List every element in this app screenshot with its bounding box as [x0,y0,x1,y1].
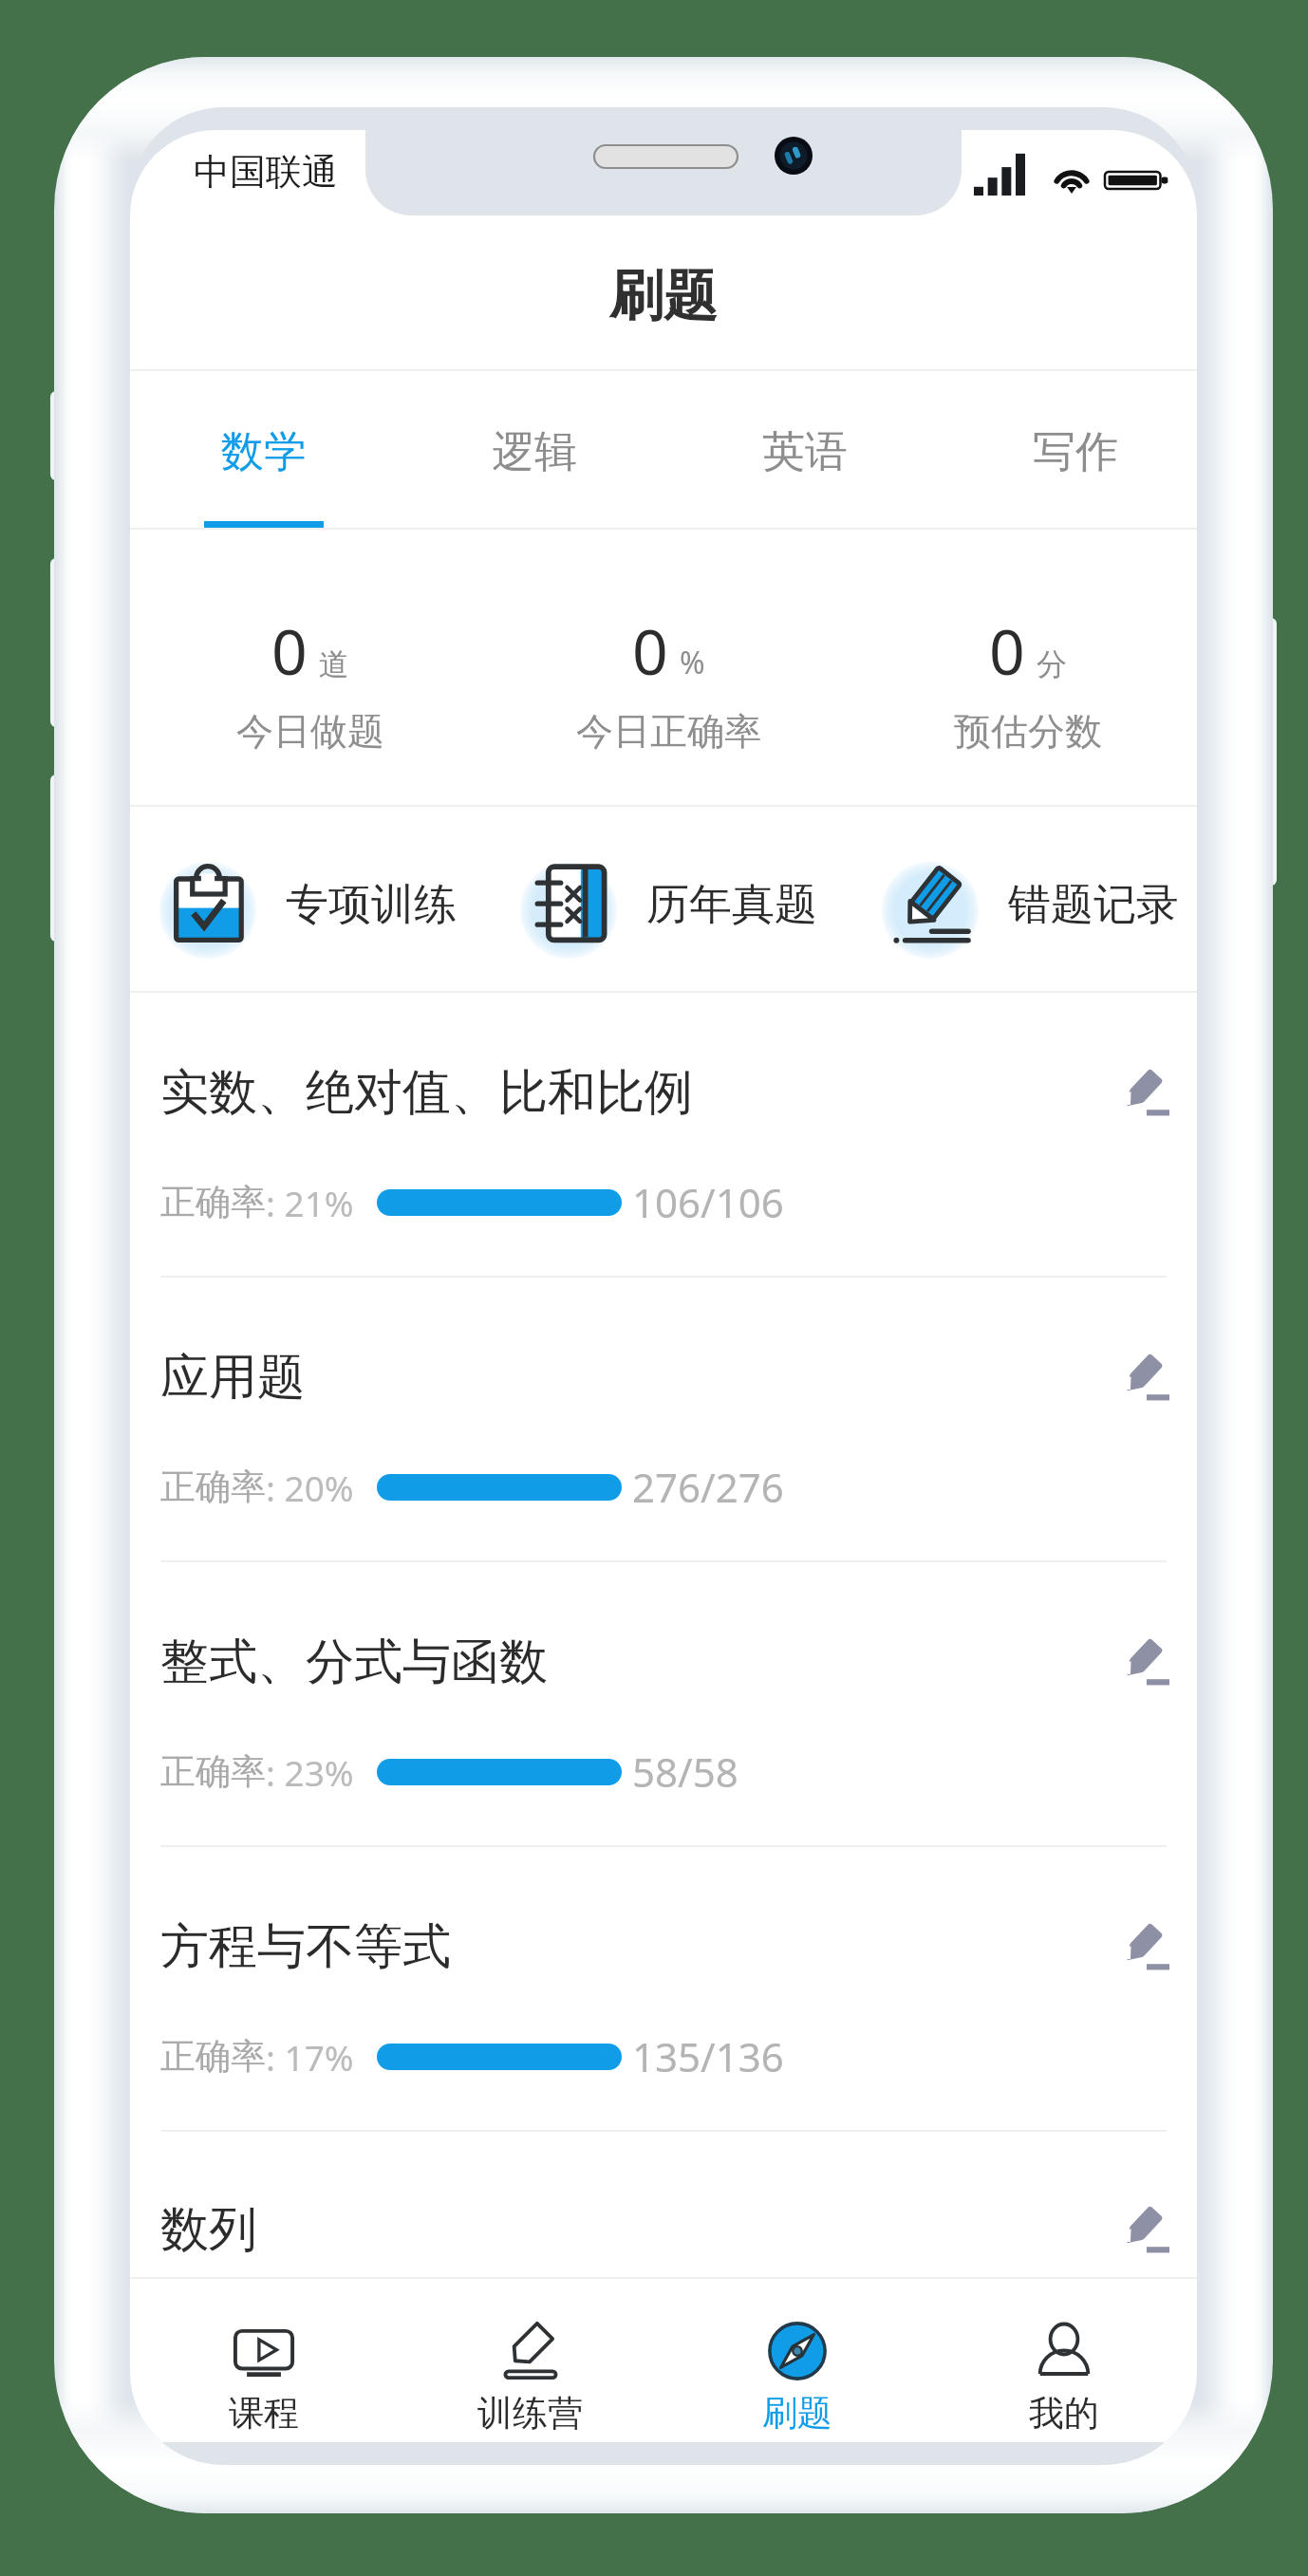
staticText: 106/106 [632,1175,784,1229]
button[interactable]: 错题记录 [851,807,1197,993]
button[interactable]: 实数、绝对值、比和比例 [130,993,1197,1278]
button[interactable]: 历年真题 [490,807,846,993]
staticText: 0 [271,607,308,693]
button[interactable]: 数列 [130,2132,1197,2277]
staticText: : 23% [266,1748,354,1796]
staticText: 预估分数 [954,708,1102,755]
staticText: 正确率 [160,1749,266,1794]
staticText: 刷题 [609,262,718,330]
staticText: 实数、绝对值、比和比例 [160,1062,693,1123]
staticText: 英语 [762,425,848,479]
button[interactable]: 专项训练 [130,807,485,993]
staticText: 错题记录 [1008,878,1179,932]
staticText: 我的 [1029,2391,1099,2436]
staticText: 训练营 [477,2391,583,2436]
button[interactable]: 编辑 [1100,1057,1170,1128]
staticText: 道 [319,645,349,683]
button[interactable]: 我的 [930,2279,1197,2442]
staticText: : 17% [266,2033,354,2081]
button[interactable]: 编辑 [1100,1912,1170,1982]
staticText: : 20% [266,1464,354,1511]
staticText: 正确率 [160,1180,266,1224]
button[interactable]: 整式、分式与函数 [130,1562,1197,1847]
staticText: 135/136 [632,2029,784,2083]
staticText: 数学 [221,425,307,479]
staticText: 数列 [160,2199,257,2260]
button[interactable]: 应用题 [130,1278,1197,1562]
staticText: 课程 [229,2391,299,2436]
staticText: 正确率 [160,2034,266,2079]
staticText: 历年真题 [646,878,817,932]
staticText: 方程与不等式 [160,1916,451,1977]
staticText: 今日做题 [236,708,384,755]
staticText: 分 [1037,645,1067,683]
button[interactable]: 方程与不等式 [130,1847,1197,2132]
staticText: 正确率 [160,1465,266,1509]
staticText: 0 [989,607,1025,693]
button[interactable]: 英语 [663,371,930,530]
staticText: % [680,642,705,683]
staticText: 专项训练 [286,878,457,932]
button[interactable]: 写作 [930,371,1197,530]
staticText: 58/58 [632,1745,738,1799]
button[interactable]: 课程 [130,2279,397,2442]
button[interactable]: 逻辑 [397,371,663,530]
staticText: 写作 [1033,425,1118,479]
button[interactable]: 编辑 [1100,2194,1170,2265]
staticText: 刷题 [762,2391,832,2436]
staticText: : 21% [266,1179,354,1226]
staticText: 今日正确率 [576,708,761,755]
staticText: 276/276 [632,1460,784,1514]
button[interactable]: 编辑 [1100,1342,1170,1412]
button[interactable]: 刷题 [663,2279,930,2442]
button[interactable]: 训练营 [397,2279,663,2442]
staticText: 应用题 [160,1347,306,1408]
staticText: 中国联通 [194,149,338,195]
staticText: 整式、分式与函数 [160,1632,548,1692]
staticText: 0 [632,607,668,693]
staticText: 逻辑 [492,425,577,479]
button[interactable]: 数学 [130,371,397,530]
button[interactable]: 编辑 [1100,1627,1170,1697]
